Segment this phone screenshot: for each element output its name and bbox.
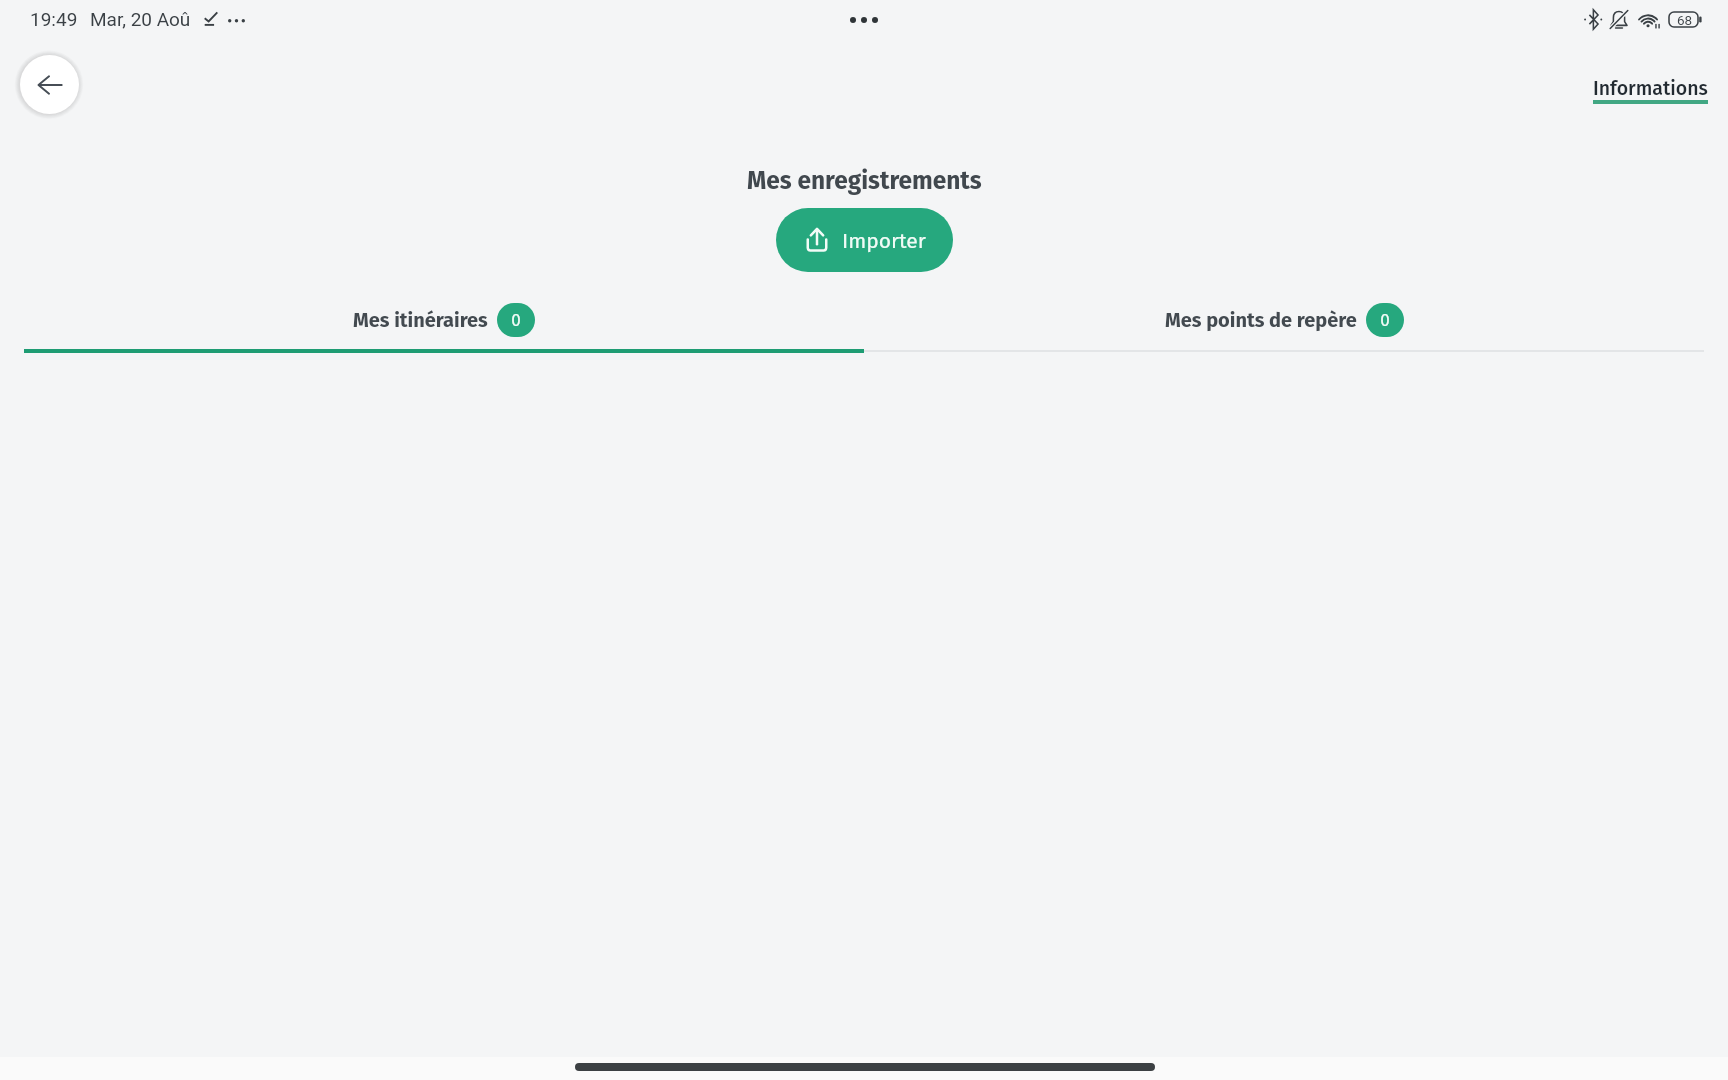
button[interactable]: Back <box>20 55 79 114</box>
staticText: Mes enregistrements <box>747 166 982 195</box>
button[interactable]: Informations <box>1593 77 1708 104</box>
staticText: 68 <box>1677 12 1693 28</box>
staticText: 0 <box>511 310 521 330</box>
staticText: 19:49 <box>30 8 78 30</box>
staticText: Informations <box>1593 77 1708 100</box>
staticText: Mar, 20 Aoû <box>90 8 191 30</box>
button[interactable]: Mes points de repère <box>864 290 1704 349</box>
staticText: Mes itinéraires <box>353 308 488 332</box>
staticText: Importer <box>842 228 926 253</box>
button[interactable]: Importer <box>776 208 953 272</box>
staticText: 0 <box>1380 310 1390 330</box>
staticText: Mes points de repère <box>1165 308 1357 332</box>
button[interactable]: Mes itinéraires <box>24 290 864 349</box>
